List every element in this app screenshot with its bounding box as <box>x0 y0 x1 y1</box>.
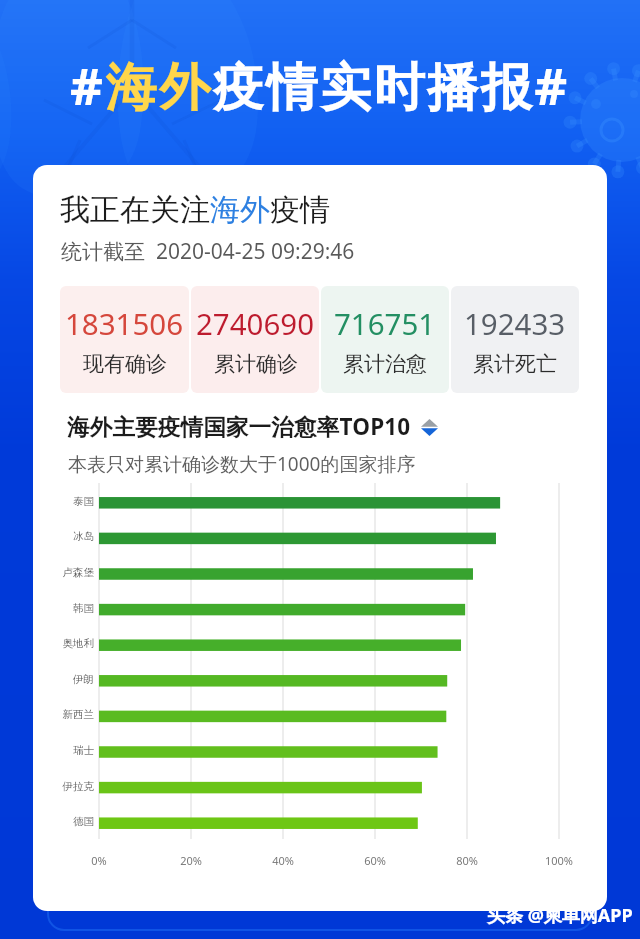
staticText: 统计截至 2020-04-25 09:29:46 <box>61 237 355 266</box>
button[interactable]: 2740690 <box>191 286 319 393</box>
staticText: 80% <box>445 853 489 868</box>
staticText: 海外主要疫情国家一治愈率TOP10 <box>67 411 411 442</box>
button[interactable]: 716751 <box>321 286 449 393</box>
staticText: 累计确诊 <box>214 351 298 377</box>
staticText: 100% <box>537 853 581 868</box>
staticText: 韩国 <box>44 602 94 615</box>
staticText: #海外疫情实时播报# <box>70 50 570 120</box>
staticText: 冰岛 <box>44 530 94 543</box>
staticText: 本表只对累计确诊数大于1000的国家排序 <box>68 451 416 477</box>
staticText: 192433 <box>464 303 566 343</box>
staticText: 瑞士 <box>44 744 94 757</box>
staticText: 1831506 <box>65 303 184 343</box>
staticText: 60% <box>353 853 397 868</box>
staticText: 头条 @柬单网APP <box>487 903 633 928</box>
button[interactable]: Sort order <box>418 416 440 438</box>
staticText: 0% <box>77 853 121 868</box>
staticText: 现有确诊 <box>83 351 167 377</box>
staticText: 累计死亡 <box>473 351 557 377</box>
staticText: 累计治愈 <box>343 351 427 377</box>
staticText: 2740690 <box>196 303 315 343</box>
staticText: 奥地利 <box>44 637 94 650</box>
staticText: 20% <box>169 853 213 868</box>
staticText: 伊拉克 <box>44 780 94 793</box>
staticText: 我正在关注海外疫情 <box>60 191 330 229</box>
button[interactable]: 1831506 <box>60 286 189 393</box>
staticText: 卢森堡 <box>44 566 94 579</box>
staticText: 716751 <box>334 303 436 343</box>
staticText: 泰国 <box>44 495 94 508</box>
staticText: 伊朗 <box>44 673 94 686</box>
staticText: 德国 <box>44 815 94 828</box>
staticText: 新西兰 <box>44 708 94 721</box>
staticText: 40% <box>261 853 305 868</box>
button[interactable]: 192433 <box>451 286 579 393</box>
